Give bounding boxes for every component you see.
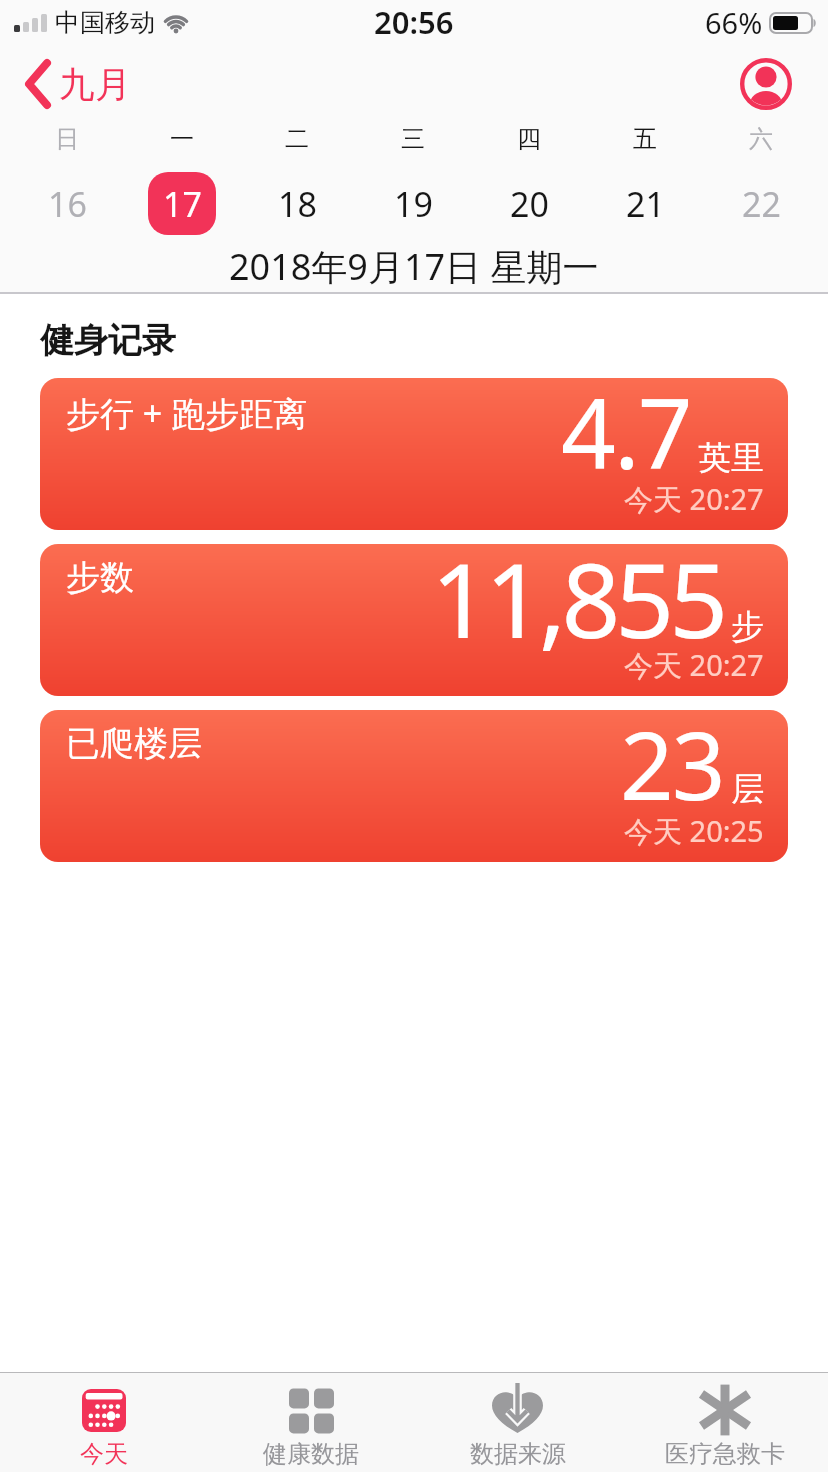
staticText: 一 bbox=[170, 124, 194, 154]
staticText: 日 bbox=[55, 124, 79, 154]
staticText: 2018年9月17日 星期一 bbox=[229, 242, 599, 291]
staticText: 九月 bbox=[59, 62, 131, 107]
button[interactable]: 20 bbox=[495, 172, 563, 235]
staticText: 今天 20:25 bbox=[624, 811, 764, 851]
staticText: 层 bbox=[731, 768, 764, 810]
button[interactable]: 17 bbox=[148, 172, 216, 235]
staticText: 今天 20:27 bbox=[624, 479, 764, 519]
button[interactable]: 步数 bbox=[40, 544, 788, 696]
button[interactable]: 19 bbox=[379, 172, 447, 235]
staticText: 11,855 bbox=[431, 544, 724, 668]
staticText: 四 bbox=[517, 124, 541, 154]
button[interactable]: 数据来源 bbox=[414, 1373, 621, 1472]
staticText: 健身记录 bbox=[40, 319, 176, 362]
staticText: 数据来源 bbox=[470, 1439, 566, 1469]
staticText: 20 bbox=[510, 181, 549, 227]
button[interactable]: 21 bbox=[611, 172, 679, 235]
staticText: 66% bbox=[705, 3, 763, 42]
staticText: 五 bbox=[633, 124, 657, 154]
staticText: 步 bbox=[731, 606, 764, 648]
staticText: 18 bbox=[278, 181, 317, 227]
staticText: 健康数据 bbox=[263, 1439, 359, 1469]
button[interactable]: 步行 + 跑步距离 bbox=[40, 378, 788, 530]
button[interactable]: 健康数据 bbox=[207, 1373, 414, 1472]
staticText: 20:56 bbox=[374, 1, 454, 43]
staticText: 今天 20:27 bbox=[624, 645, 764, 685]
staticText: 4.7 bbox=[561, 378, 691, 497]
button[interactable] bbox=[740, 58, 792, 110]
staticText: 步数 bbox=[66, 556, 134, 599]
staticText: 今天 bbox=[80, 1439, 128, 1469]
button[interactable]: 医疗急救卡 bbox=[621, 1373, 828, 1472]
staticText: 六 bbox=[749, 124, 773, 154]
staticText: 17 bbox=[163, 181, 202, 227]
staticText: 英里 bbox=[698, 437, 764, 479]
button[interactable]: 已爬楼层 bbox=[40, 710, 788, 862]
button[interactable]: 16 bbox=[33, 172, 101, 235]
staticText: 16 bbox=[48, 181, 87, 227]
button[interactable]: 18 bbox=[263, 172, 331, 235]
button[interactable]: 22 bbox=[727, 172, 795, 235]
staticText: 23 bbox=[620, 710, 724, 828]
button[interactable]: 九月 bbox=[26, 60, 131, 108]
staticText: 21 bbox=[626, 181, 665, 227]
staticText: 19 bbox=[394, 181, 433, 227]
button[interactable]: 今天 bbox=[0, 1373, 207, 1472]
staticText: 三 bbox=[401, 124, 425, 154]
staticText: 医疗急救卡 bbox=[665, 1439, 785, 1469]
staticText: 已爬楼层 bbox=[66, 722, 202, 765]
staticText: 二 bbox=[285, 124, 309, 154]
staticText: 22 bbox=[742, 181, 781, 227]
staticText: 中国移动 bbox=[55, 7, 155, 38]
staticText: 步行 + 跑步距离 bbox=[66, 390, 308, 436]
